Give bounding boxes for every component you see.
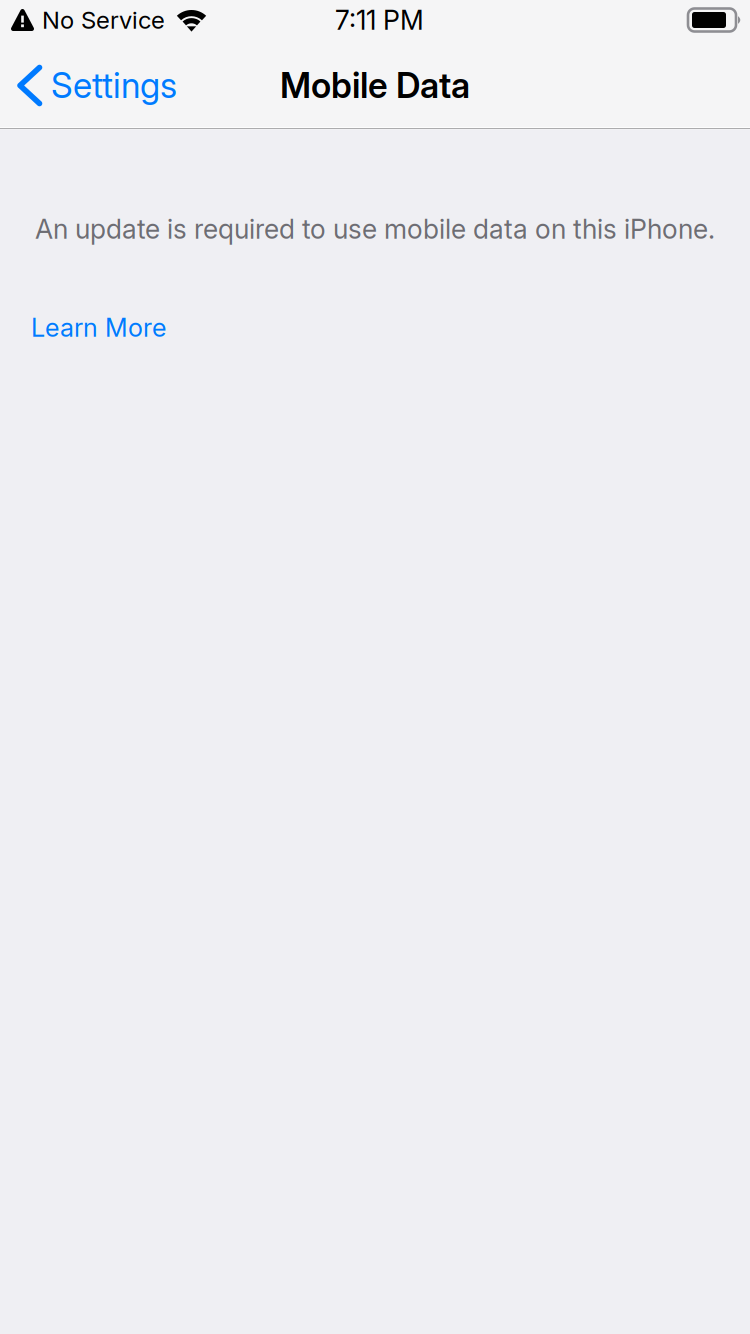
staticText: An update is required to use mobile data…: [35, 213, 715, 245]
staticText: Learn More: [31, 312, 166, 343]
staticText: No Service: [42, 5, 165, 34]
staticText: 7:11 PM: [335, 4, 424, 36]
button[interactable]: Settings: [0, 42, 193, 129]
button[interactable]: Learn More: [0, 304, 182, 351]
staticText: Mobile Data: [280, 64, 470, 106]
staticText: Settings: [51, 64, 177, 106]
